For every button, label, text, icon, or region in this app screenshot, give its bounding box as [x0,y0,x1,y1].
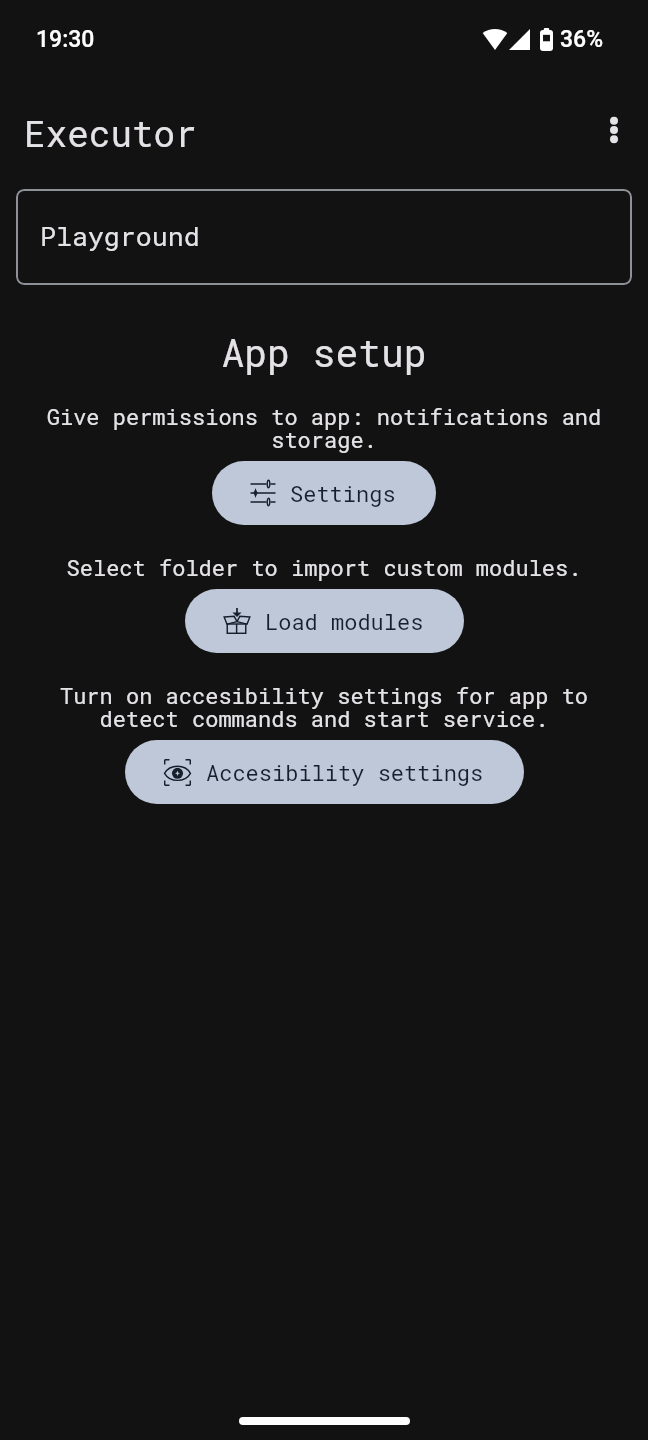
staticText: Executor [24,109,197,156]
button[interactable]: Load modules [185,589,464,653]
staticText: Select folder to import custom modules. [32,553,616,582]
staticText: Turn on accesibility settings for app to… [32,681,616,733]
button[interactable]: More options [580,98,648,166]
staticText: 19:30 [36,26,95,53]
button[interactable]: Settings [212,461,436,525]
staticText: Give permissions to app: notifications a… [32,402,616,454]
staticText: Settings [290,479,396,508]
staticText: Load modules [265,607,424,636]
button[interactable]: Playground [16,189,632,285]
staticText: Accesibility settings [206,758,484,787]
staticText: App setup [0,327,648,377]
button[interactable]: Accesibility settings [125,740,524,804]
staticText: 36% [560,26,604,53]
staticText: Playground [40,218,200,253]
